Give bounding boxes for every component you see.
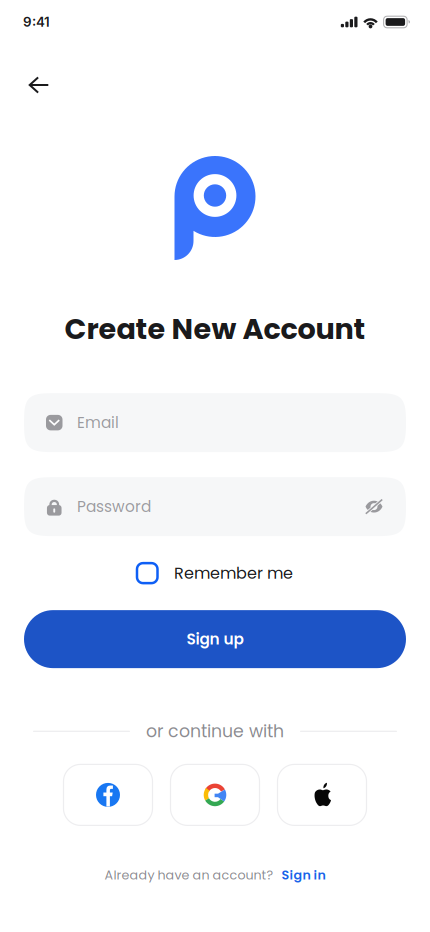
button[interactable]: Sign in [281,866,325,884]
staticText: 9:41 [23,14,50,30]
staticText: or continue with [146,719,284,743]
staticText: Sign in [281,866,325,884]
button[interactable]: Sign up [24,610,406,668]
staticText: Remember me [174,562,293,584]
button[interactable]: Show password [359,492,389,522]
button[interactable]: Continue with Apple [277,764,366,825]
button[interactable]: Remember me [137,558,293,588]
button[interactable]: Back [17,63,61,107]
button[interactable]: Continue with Facebook [63,764,152,825]
staticText: Password [77,496,151,517]
staticText: Email [77,412,119,433]
staticText: Sign up [186,628,243,650]
staticText: Create New Account [64,309,365,349]
button[interactable]: Continue with Google [170,764,259,825]
staticText: Already have an account? [104,866,273,884]
